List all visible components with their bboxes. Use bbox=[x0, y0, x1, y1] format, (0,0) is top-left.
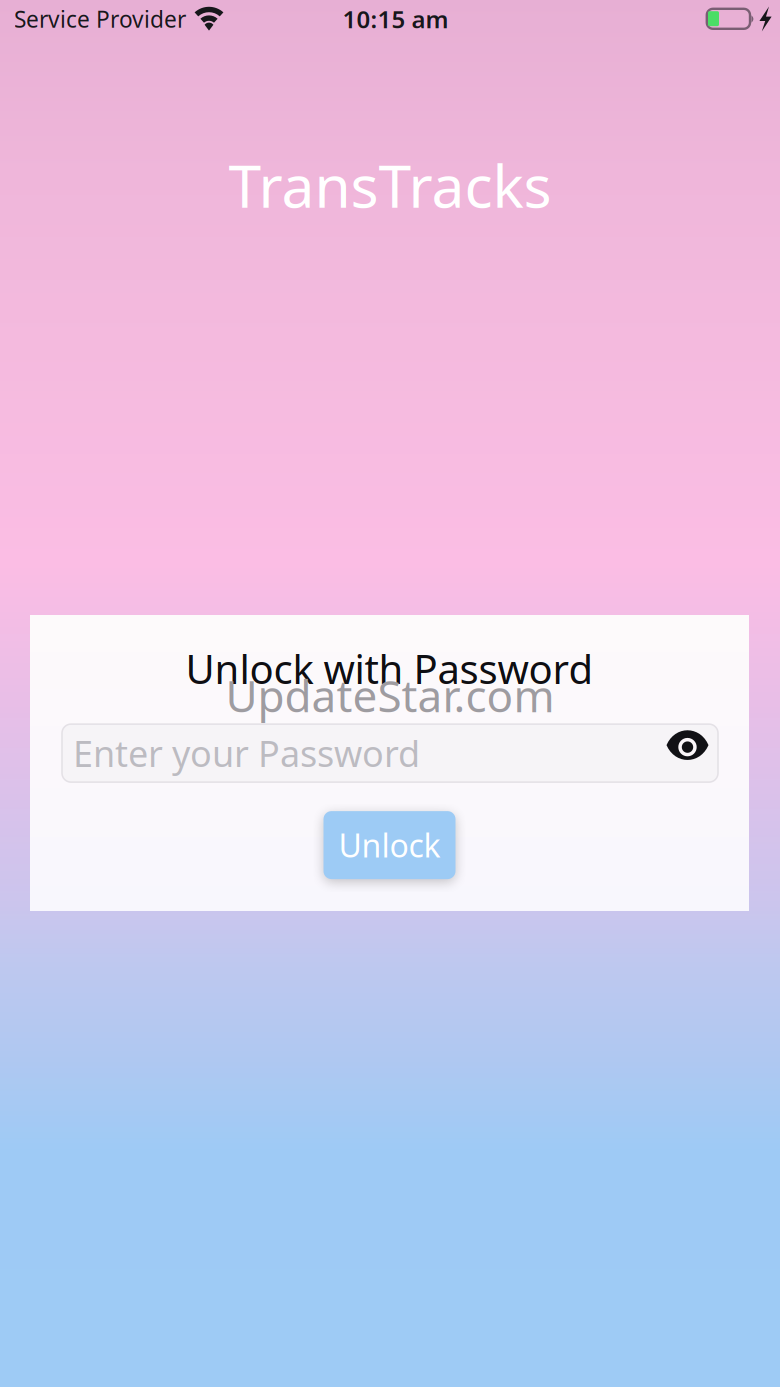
button[interactable]: Show password bbox=[648, 724, 718, 782]
staticText: Enter your Password bbox=[73, 729, 420, 777]
staticText: UpdateStar.com bbox=[225, 666, 554, 724]
staticText: TransTracks bbox=[228, 146, 551, 224]
button[interactable]: Unlock bbox=[323, 811, 455, 879]
staticText: Unlock with Password bbox=[185, 642, 593, 695]
staticText: Unlock bbox=[338, 824, 440, 866]
button[interactable]: Enter your Password bbox=[62, 724, 718, 782]
staticText: Service Provider bbox=[14, 4, 186, 34]
staticText: 10:15 am bbox=[342, 3, 448, 35]
